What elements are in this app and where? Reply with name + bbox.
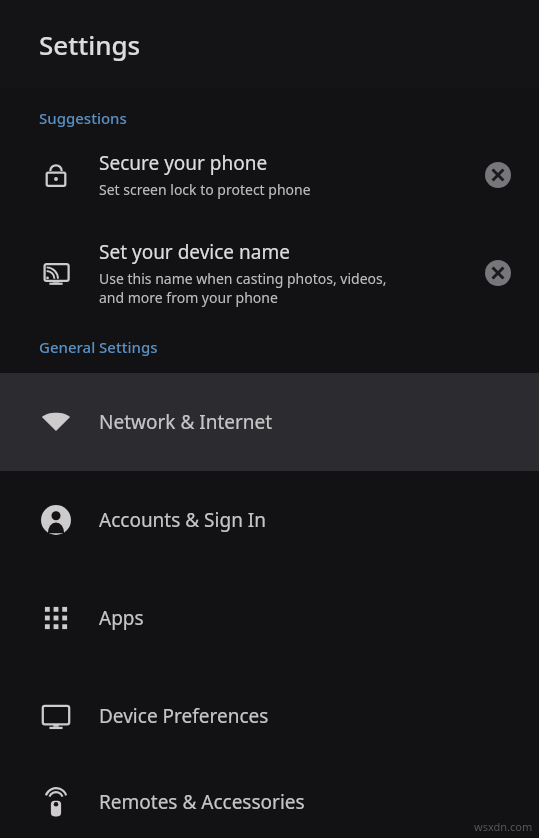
button[interactable]: Cast bbox=[0, 231, 539, 315]
staticText: Remotes & Accessories bbox=[99, 789, 305, 815]
staticText: Set screen lock to protect phone bbox=[99, 180, 311, 199]
other: Cast bbox=[39, 256, 73, 290]
staticText: Settings bbox=[39, 27, 141, 62]
staticText: Secure your phone bbox=[99, 150, 268, 176]
staticText: Accounts & Sign In bbox=[99, 507, 266, 533]
button[interactable]: Lock bbox=[0, 142, 539, 207]
button[interactable]: Remotes & Accessories bbox=[0, 765, 539, 838]
button[interactable]: Network & Internet bbox=[0, 373, 539, 471]
button[interactable]: Dismiss bbox=[481, 158, 515, 192]
staticText: Set your device name bbox=[99, 239, 290, 265]
button[interactable]: Apps bbox=[0, 569, 539, 667]
other: Lock bbox=[39, 158, 73, 192]
staticText: Network & Internet bbox=[99, 409, 273, 435]
staticText: Use this name when casting photos, video… bbox=[99, 269, 387, 307]
staticText: General Settings bbox=[39, 337, 158, 357]
button[interactable]: Dismiss bbox=[481, 256, 515, 290]
staticText: Apps bbox=[99, 605, 144, 631]
staticText: Device Preferences bbox=[99, 703, 269, 729]
staticText: Suggestions bbox=[39, 108, 127, 128]
button[interactable]: Device Preferences bbox=[0, 667, 539, 765]
button[interactable]: Accounts & Sign In bbox=[0, 471, 539, 569]
staticText: wsxdn.com bbox=[474, 819, 533, 834]
